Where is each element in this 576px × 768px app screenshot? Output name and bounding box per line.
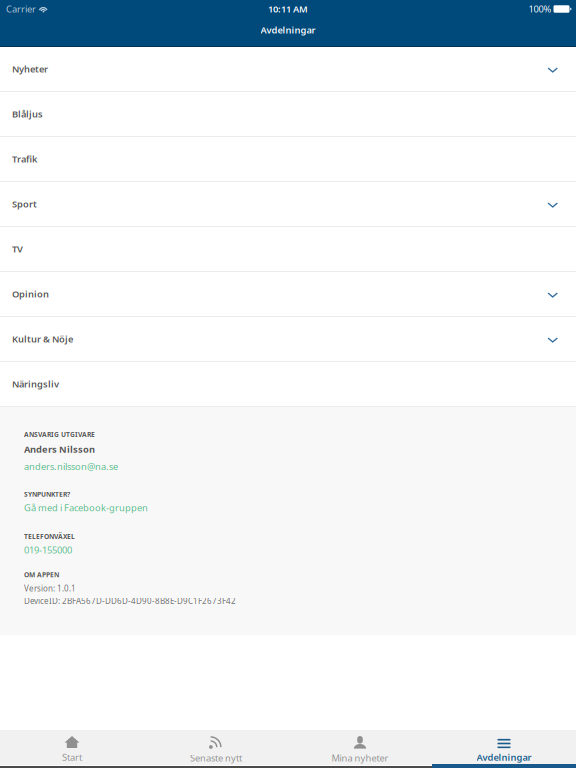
staticText: TELEFONVÄXEL bbox=[24, 532, 75, 541]
staticText: Avdelningar bbox=[476, 751, 531, 763]
button[interactable]: Trafik bbox=[0, 137, 576, 182]
staticText: Anders Nilsson bbox=[24, 443, 95, 455]
staticText: Kultur & Nöje bbox=[12, 333, 73, 345]
button[interactable]: anders.nilsson@na.se bbox=[24, 455, 118, 473]
staticText: Opinion bbox=[12, 288, 49, 300]
button[interactable]: Näringsliv bbox=[0, 362, 576, 407]
staticText: Sport bbox=[12, 198, 37, 210]
button[interactable]: Gå med i Facebook-gruppen bbox=[24, 498, 148, 514]
staticText: Avdelningar bbox=[260, 24, 315, 36]
button[interactable]: Opinion bbox=[0, 272, 576, 317]
button[interactable]: Senaste nytt bbox=[144, 730, 288, 768]
staticText: 10:11 AM bbox=[268, 3, 308, 15]
button[interactable]: Sport bbox=[0, 182, 576, 227]
staticText: Gå med i Facebook-gruppen bbox=[24, 501, 148, 514]
staticText: 100% bbox=[528, 3, 551, 15]
staticText: TV bbox=[12, 243, 23, 255]
staticText: Nyheter bbox=[12, 63, 48, 75]
staticText: Start bbox=[62, 751, 82, 763]
staticText: anders.nilsson@na.se bbox=[24, 460, 118, 473]
staticText: 019-155000 bbox=[24, 544, 72, 556]
staticText: SYNPUNKTER? bbox=[24, 490, 70, 498]
button[interactable]: Blåljus bbox=[0, 92, 576, 137]
staticText: Senaste nytt bbox=[190, 752, 242, 764]
button[interactable]: Mina nyheter bbox=[288, 730, 432, 768]
staticText: Carrier bbox=[6, 3, 36, 15]
button[interactable]: TV bbox=[0, 227, 576, 272]
button[interactable]: Avdelningar bbox=[432, 730, 576, 768]
staticText: Trafik bbox=[12, 153, 37, 165]
button[interactable]: Start bbox=[0, 730, 144, 768]
staticText: ANSVARIG UTGIVARE bbox=[24, 430, 95, 439]
staticText: Näringsliv bbox=[12, 378, 59, 390]
button[interactable]: 019-155000 bbox=[24, 541, 72, 556]
staticText: OM APPEN bbox=[24, 570, 59, 579]
button[interactable]: Kultur & Nöje bbox=[0, 317, 576, 362]
staticText: Blåljus bbox=[12, 108, 43, 120]
staticText: DeviceID: 2BFA567D-DD6D-4D90-8B8E-D9C1F2… bbox=[24, 596, 236, 606]
button[interactable]: Nyheter bbox=[0, 47, 576, 92]
staticText: Version: 1.0.1 bbox=[24, 583, 76, 594]
staticText: Mina nyheter bbox=[331, 752, 388, 764]
